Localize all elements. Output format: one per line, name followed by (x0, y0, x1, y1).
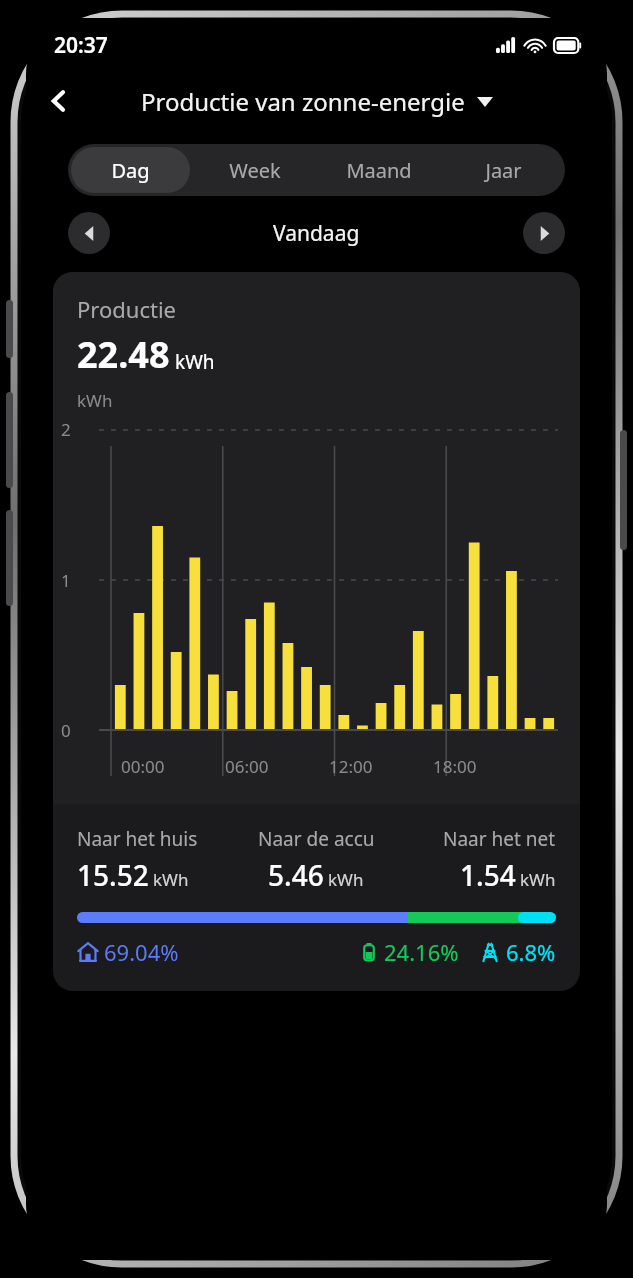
staticText: 24.16% (384, 937, 459, 967)
staticText: Maand (346, 157, 412, 184)
staticText: 00:00 (121, 755, 165, 778)
staticText: 22.48 (77, 330, 170, 379)
button[interactable]: Previous day (68, 212, 110, 254)
staticText: 0 (61, 719, 71, 742)
staticText: kWh (153, 868, 189, 891)
button[interactable]: Jaar (444, 147, 562, 193)
button[interactable]: Next day (523, 212, 565, 254)
staticText: 12:00 (329, 755, 373, 778)
staticText: 1.54 (460, 856, 516, 894)
staticText: Naar het huis (77, 826, 198, 852)
button[interactable]: Back (36, 78, 82, 124)
staticText: Productie van zonne-energie (141, 85, 465, 118)
staticText: Dag (111, 157, 150, 184)
staticText: kWh (328, 868, 364, 891)
staticText: kWh (520, 868, 556, 891)
staticText: Vandaag (273, 219, 360, 248)
staticText: 5.46 (268, 856, 324, 894)
button[interactable]: Productie (53, 272, 580, 991)
staticText: Naar de accu (258, 826, 375, 852)
staticText: Productie (77, 294, 176, 324)
staticText: 6.8% (506, 937, 556, 967)
staticText: 18:00 (433, 755, 477, 778)
staticText: 1 (61, 569, 71, 592)
button[interactable]: Week (196, 147, 314, 193)
staticText: 2 (61, 418, 71, 441)
staticText: 20:37 (54, 31, 108, 60)
button[interactable]: Dag (71, 147, 190, 193)
staticText: Jaar (485, 157, 522, 184)
staticText: 15.52 (77, 856, 149, 894)
staticText: Week (229, 157, 281, 184)
staticText: Naar het net (443, 826, 556, 852)
staticText: 69.04% (104, 937, 179, 967)
button[interactable]: Maand (320, 147, 438, 193)
button[interactable]: Productie van zonne-energie (137, 85, 497, 118)
staticText: kWh (77, 389, 113, 412)
staticText: 06:00 (225, 755, 269, 778)
staticText: kWh (175, 349, 215, 375)
